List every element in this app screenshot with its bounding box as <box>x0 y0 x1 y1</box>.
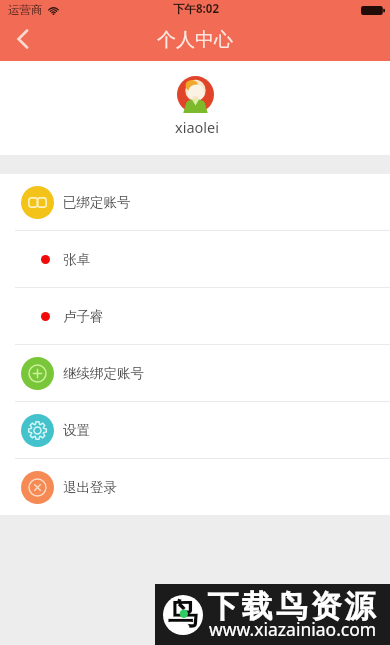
staticText: 个人中心 <box>157 28 233 52</box>
staticText: 已绑定账号 <box>63 194 131 211</box>
button[interactable]: 已绑定账号 <box>0 174 390 230</box>
button[interactable]: 继续绑定账号 <box>0 345 390 401</box>
staticText: 下载鸟资源 <box>206 587 377 626</box>
staticText: 继续绑定账号 <box>63 365 144 382</box>
staticText: xiaolei <box>175 117 219 137</box>
staticText: 设置 <box>63 422 90 439</box>
staticText: 卢子睿 <box>63 308 104 325</box>
button[interactable]: 卢子睿 <box>0 288 390 344</box>
button[interactable]: 设置 <box>0 402 390 458</box>
button[interactable]: Back <box>2 18 43 59</box>
staticText: www.xiazainiao.com <box>209 617 377 641</box>
staticText: 张卓 <box>63 251 90 268</box>
staticText: 下午8:02 <box>173 1 219 17</box>
staticText: 鸟 <box>168 595 198 633</box>
staticText: 运营商 <box>8 3 43 17</box>
button[interactable]: 张卓 <box>0 231 390 287</box>
button[interactable]: 退出登录 <box>0 459 390 515</box>
staticText: 退出登录 <box>63 479 117 496</box>
